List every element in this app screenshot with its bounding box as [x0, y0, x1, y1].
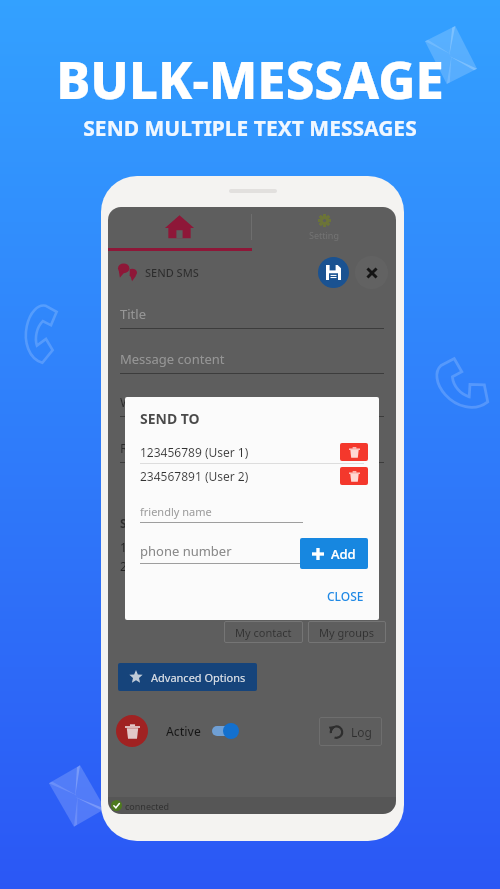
button[interactable]: Home — [108, 207, 251, 248]
staticText: SEND SMS — [145, 265, 199, 280]
button[interactable]: My groups — [319, 621, 375, 643]
button[interactable]: CLOSE — [327, 588, 364, 604]
staticText: connected — [125, 800, 170, 812]
button[interactable]: Delete contact — [340, 467, 368, 485]
staticText: Repeat: never — [120, 439, 205, 457]
staticText: BULK-MESSAGE — [56, 44, 444, 113]
staticText: SEND TO — [120, 515, 172, 531]
staticText: Advanced Options — [151, 670, 246, 685]
staticText: 234567891 (User 2) — [120, 558, 229, 574]
staticText: Log — [351, 724, 372, 740]
staticText: CLOSE — [327, 588, 364, 604]
button[interactable] — [211, 723, 239, 739]
staticText: 123456789 (User 1) — [120, 539, 229, 555]
staticText: friendly name — [140, 504, 212, 519]
staticText: 234567891 (User 2) — [140, 468, 249, 484]
button[interactable]: My contact — [235, 621, 292, 643]
staticText: Title — [120, 305, 146, 323]
staticText: Active — [166, 723, 201, 739]
staticText: When: now — [120, 393, 189, 411]
staticText: 123456789 (User 1) — [140, 444, 249, 460]
button[interactable]: Close — [355, 256, 388, 289]
button[interactable]: Save — [318, 257, 349, 288]
button[interactable]: Delete — [116, 715, 148, 747]
staticText: My contact — [235, 625, 292, 640]
staticText: Setting — [309, 229, 339, 241]
button[interactable]: Setting — [252, 207, 396, 248]
button[interactable]: Add — [312, 538, 356, 569]
button[interactable]: Delete contact — [340, 443, 368, 461]
button[interactable]: Advanced Options — [129, 663, 246, 691]
staticText: My groups — [319, 625, 375, 640]
staticText: SEND MULTIPLE TEXT MESSAGES — [83, 114, 417, 143]
staticText: Message content — [120, 350, 225, 368]
button[interactable]: Log — [329, 717, 372, 746]
staticText: Add — [331, 545, 356, 563]
staticText: phone number — [140, 542, 232, 560]
staticText: SEND TO — [140, 409, 200, 428]
